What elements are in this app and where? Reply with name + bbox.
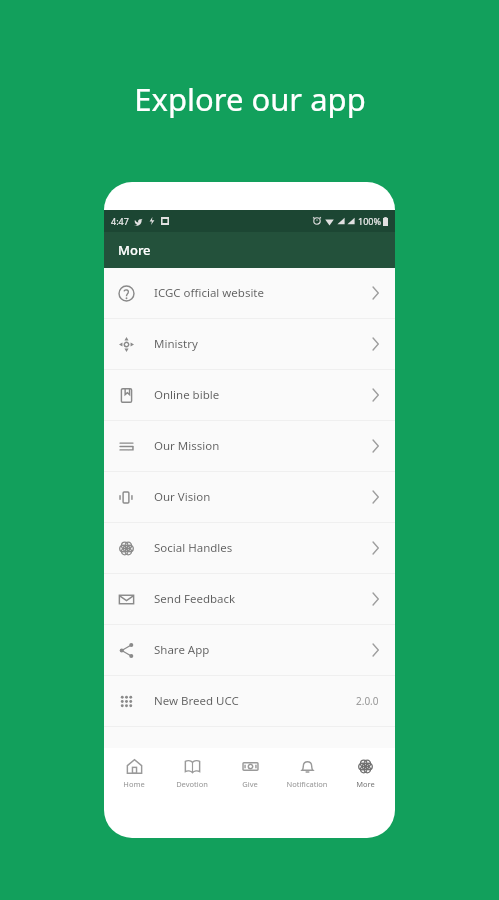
button[interactable]: Send Feedback [104, 574, 395, 624]
button[interactable]: Share App [104, 625, 395, 675]
staticText: 100% [358, 215, 381, 227]
staticText: ICGC official website [154, 285, 265, 301]
staticText: Share App [154, 642, 210, 658]
button[interactable]: ICGC official website [104, 268, 395, 318]
staticText: 4:47 [111, 215, 129, 227]
staticText: New Breed UCC [154, 693, 239, 709]
button[interactable]: Home [106, 758, 162, 789]
staticText: 2.0.0 [356, 694, 379, 708]
staticText: Our Vision [154, 489, 211, 505]
button[interactable]: New Breed UCC [104, 676, 395, 726]
button[interactable]: Online bible [104, 370, 395, 420]
staticText: Notification [286, 779, 328, 789]
staticText: Our Mission [154, 438, 220, 454]
staticText: Give [242, 779, 258, 789]
staticText: Explore our app [134, 78, 366, 120]
staticText: More [356, 779, 375, 789]
button[interactable]: Our Vision [104, 472, 395, 522]
button[interactable]: Give [222, 758, 278, 789]
staticText: Send Feedback [154, 591, 236, 607]
staticText: More [118, 241, 151, 259]
button[interactable]: Ministry [104, 319, 395, 369]
button[interactable]: Devotion [164, 758, 220, 789]
staticText: Online bible [154, 387, 220, 403]
staticText: Ministry [154, 336, 198, 352]
button[interactable]: Social Handles [104, 523, 395, 573]
button[interactable]: More [337, 758, 393, 789]
staticText: Social Handles [154, 540, 233, 556]
staticText: Home [123, 779, 145, 789]
button[interactable]: Our Mission [104, 421, 395, 471]
button[interactable]: Notification [279, 758, 335, 789]
staticText: Devotion [176, 779, 208, 789]
